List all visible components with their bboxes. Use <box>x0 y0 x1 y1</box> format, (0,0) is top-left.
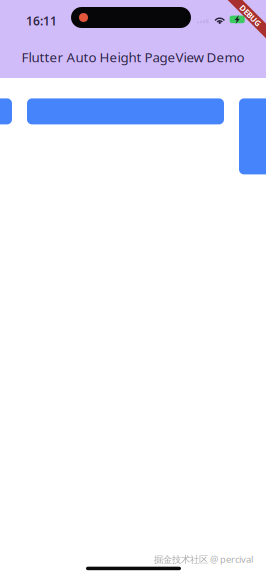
button[interactable]: Current page <box>27 98 224 124</box>
staticText: 16:11 <box>26 13 57 29</box>
button[interactable]: Previous page <box>0 98 12 124</box>
button[interactable]: Next page <box>239 98 266 174</box>
staticText: 掘金技术社区 @ percival <box>154 553 253 565</box>
staticText: Flutter Auto Height PageView Demo <box>21 48 244 66</box>
staticText: DEBUG <box>237 10 264 21</box>
